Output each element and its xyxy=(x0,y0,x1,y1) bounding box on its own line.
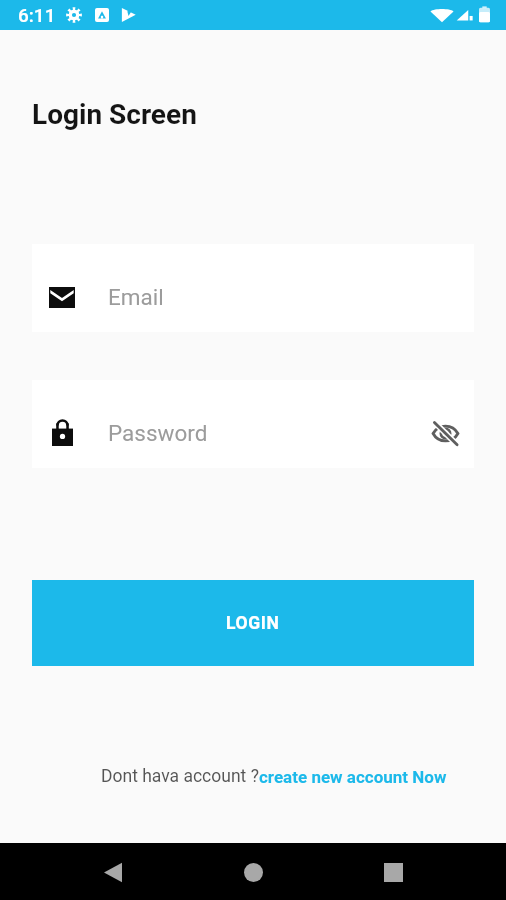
staticText: LOGIN xyxy=(226,613,280,634)
button[interactable]: LOGIN xyxy=(32,580,474,666)
staticText: 6:11 xyxy=(18,4,56,26)
button[interactable]: Password xyxy=(32,380,474,468)
staticText: Dont hava account ? xyxy=(101,766,259,787)
staticText: Email xyxy=(108,284,164,310)
button[interactable]: create new account Now xyxy=(259,767,447,787)
staticText: Password xyxy=(108,420,208,446)
button[interactable]: Recents xyxy=(365,844,421,900)
staticText: create new account Now xyxy=(259,767,447,787)
button[interactable]: Email xyxy=(32,244,474,332)
button[interactable]: Back xyxy=(85,844,141,900)
button[interactable]: Home xyxy=(225,844,281,900)
button[interactable]: Show password xyxy=(429,417,461,449)
staticText: Login Screen xyxy=(32,98,197,131)
